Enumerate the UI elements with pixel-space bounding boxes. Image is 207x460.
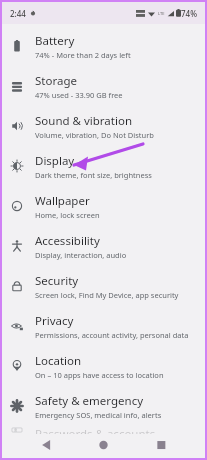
staticText: Accessibility: [35, 233, 100, 249]
staticText: Security: [35, 273, 79, 289]
button[interactable]: Passwords & accounts: [2, 426, 205, 434]
button[interactable]: Privacy: [2, 306, 205, 346]
staticText: Permissions, account activity, personal …: [35, 330, 189, 340]
staticText: Location: [35, 353, 82, 369]
button[interactable]: Display: [2, 146, 205, 186]
staticText: On – 10 apps have access to location: [35, 370, 164, 380]
staticText: LTE: [158, 11, 165, 16]
staticText: Storage: [35, 73, 77, 89]
staticText: Sound & vibration: [35, 113, 132, 129]
staticText: Safety & emergency: [35, 393, 144, 409]
button[interactable]: Battery: [2, 26, 205, 66]
button[interactable]: Sound & vibration: [2, 106, 205, 146]
staticText: 74% - More than 2 days left: [35, 50, 131, 60]
staticText: Wallpaper: [35, 193, 90, 209]
staticText: Battery: [35, 33, 75, 49]
button[interactable]: Security: [2, 266, 205, 306]
staticText: 2:44: [10, 8, 26, 19]
staticText: Display: [35, 153, 75, 169]
button[interactable]: Safety & emergency: [2, 386, 205, 426]
staticText: Passwords & accounts: [35, 426, 156, 434]
button[interactable]: Location: [2, 346, 205, 386]
staticText: Dark theme, font size, brightness: [35, 170, 152, 180]
staticText: Home, lock screen: [35, 210, 100, 220]
staticText: Privacy: [35, 313, 74, 329]
staticText: Display, interaction, audio: [35, 250, 127, 260]
button[interactable]: Wallpaper: [2, 186, 205, 226]
staticText: Screen lock, Find My Device, app securit…: [35, 290, 179, 300]
staticText: 74%: [181, 8, 197, 19]
staticText: Volume, vibration, Do Not Disturb: [35, 130, 154, 140]
button[interactable]: Storage: [2, 66, 205, 106]
staticText: 47% used - 33.90 GB free: [35, 90, 123, 100]
staticText: Emergency SOS, medical info, alerts: [35, 410, 162, 420]
button[interactable]: Accessibility: [2, 226, 205, 266]
